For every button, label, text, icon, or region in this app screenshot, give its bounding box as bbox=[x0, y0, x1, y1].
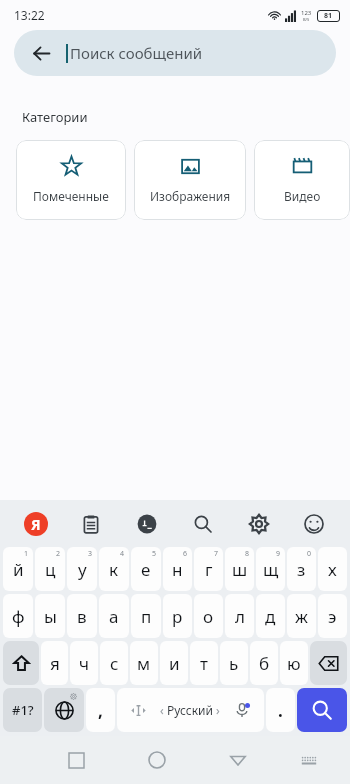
staticText: с bbox=[110, 652, 119, 675]
button[interactable]: Hide keyboard bbox=[218, 740, 258, 780]
button[interactable]: Language bbox=[44, 688, 84, 732]
button[interactable]: ж bbox=[287, 594, 316, 638]
staticText: р bbox=[172, 605, 183, 628]
button[interactable]: Search bbox=[183, 504, 223, 544]
button[interactable]: ф bbox=[3, 594, 33, 638]
button[interactable]: к bbox=[99, 547, 129, 591]
staticText: в bbox=[77, 605, 87, 628]
button[interactable]: п bbox=[131, 594, 161, 638]
button[interactable]: м bbox=[130, 641, 158, 685]
staticText: › bbox=[216, 702, 220, 718]
button[interactable]: э bbox=[318, 594, 347, 638]
staticText: . bbox=[278, 699, 283, 722]
button[interactable]: т bbox=[190, 641, 218, 685]
staticText: 9 bbox=[276, 549, 281, 559]
button[interactable]: д bbox=[256, 594, 285, 638]
staticText: 8 bbox=[245, 549, 250, 559]
button[interactable]: Switch keyboard bbox=[289, 740, 329, 780]
button[interactable]: ы bbox=[35, 594, 65, 638]
button[interactable]: ю bbox=[280, 641, 308, 685]
button[interactable]: Clipboard bbox=[71, 504, 111, 544]
button[interactable]: р bbox=[163, 594, 192, 638]
staticText: а bbox=[109, 605, 119, 628]
button[interactable]: Home bbox=[137, 740, 177, 780]
button[interactable]: Изображения bbox=[134, 140, 246, 220]
staticText: 4 bbox=[120, 549, 125, 559]
button[interactable]: Symbols bbox=[3, 688, 42, 732]
staticText: й bbox=[13, 558, 24, 581]
button[interactable]: Translate bbox=[127, 504, 167, 544]
staticText: ц bbox=[45, 558, 56, 581]
staticText: 2 bbox=[56, 549, 61, 559]
staticText: B/S bbox=[303, 17, 310, 22]
button[interactable]: х bbox=[318, 547, 347, 591]
button[interactable]: з bbox=[287, 547, 316, 591]
button[interactable]: й bbox=[3, 547, 33, 591]
button[interactable]: с bbox=[100, 641, 128, 685]
button[interactable]: г bbox=[194, 547, 223, 591]
staticText: ф bbox=[12, 605, 25, 628]
staticText: ы bbox=[44, 605, 57, 628]
staticText: 6 bbox=[183, 549, 188, 559]
staticText: Русский bbox=[167, 702, 213, 718]
staticText: щ bbox=[263, 558, 279, 581]
button[interactable]: Recents bbox=[56, 740, 96, 780]
staticText: о bbox=[203, 605, 214, 628]
staticText: Видео bbox=[284, 188, 321, 204]
button[interactable]: Period bbox=[266, 688, 295, 732]
staticText: л bbox=[235, 605, 245, 628]
button[interactable]: е bbox=[131, 547, 161, 591]
button[interactable]: и bbox=[160, 641, 188, 685]
staticText: з bbox=[297, 558, 306, 581]
staticText: 0 bbox=[307, 549, 312, 559]
staticText: #1? bbox=[12, 701, 34, 719]
button[interactable]: Settings bbox=[239, 504, 279, 544]
staticText: э bbox=[328, 605, 337, 628]
staticText: ‹ bbox=[160, 702, 164, 718]
staticText: Поиск сообщений bbox=[70, 43, 203, 63]
button[interactable]: Emoji bbox=[294, 504, 334, 544]
staticText: е bbox=[141, 558, 151, 581]
button[interactable]: ‹ bbox=[117, 688, 264, 732]
button[interactable]: я bbox=[41, 641, 68, 685]
button[interactable]: в bbox=[67, 594, 97, 638]
button[interactable]: о bbox=[194, 594, 223, 638]
button[interactable]: Back bbox=[26, 38, 56, 68]
button[interactable]: л bbox=[225, 594, 254, 638]
button[interactable]: Shift bbox=[3, 641, 39, 685]
staticText: ж bbox=[295, 605, 308, 628]
staticText: т bbox=[200, 652, 208, 675]
button[interactable]: Помеченные bbox=[16, 140, 126, 220]
button[interactable]: ш bbox=[225, 547, 254, 591]
button[interactable]: Search bbox=[297, 688, 347, 732]
button[interactable]: Видео bbox=[254, 140, 350, 220]
staticText: Категории bbox=[22, 108, 88, 126]
button[interactable]: щ bbox=[256, 547, 285, 591]
staticText: 81 bbox=[324, 11, 333, 21]
staticText: ю bbox=[287, 652, 301, 675]
button[interactable]: б bbox=[250, 641, 278, 685]
staticText: и bbox=[169, 652, 180, 675]
button[interactable]: ц bbox=[35, 547, 65, 591]
staticText: б bbox=[259, 652, 270, 675]
button[interactable]: ь bbox=[220, 641, 248, 685]
staticText: ч bbox=[79, 652, 90, 675]
staticText: н bbox=[172, 558, 183, 581]
button[interactable]: ч bbox=[70, 641, 98, 685]
staticText: я bbox=[50, 652, 60, 675]
staticText: м bbox=[137, 652, 151, 675]
button[interactable]: а bbox=[99, 594, 129, 638]
button[interactable]: Comma bbox=[86, 688, 115, 732]
staticText: ь bbox=[229, 652, 239, 675]
button[interactable]: Backspace bbox=[310, 641, 347, 685]
staticText: 7 bbox=[214, 549, 219, 559]
button[interactable]: у bbox=[67, 547, 97, 591]
staticText: 13:22 bbox=[14, 7, 45, 23]
staticText: Я bbox=[31, 515, 41, 534]
button[interactable]: Yandex bbox=[16, 504, 56, 544]
staticText: п bbox=[141, 605, 152, 628]
button[interactable]: Back bbox=[14, 30, 336, 76]
button[interactable]: н bbox=[163, 547, 192, 591]
staticText: 3 bbox=[88, 549, 93, 559]
staticText: х bbox=[328, 558, 337, 581]
